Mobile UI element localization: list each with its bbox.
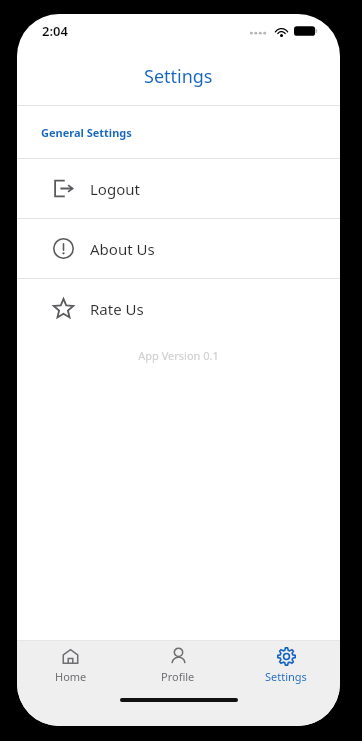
staticText: Profile bbox=[161, 669, 195, 684]
staticText: 2:04 bbox=[42, 22, 68, 40]
button[interactable]: About Us bbox=[17, 219, 340, 278]
button[interactable]: Home bbox=[17, 641, 124, 690]
staticText: Rate Us bbox=[90, 299, 144, 319]
staticText: Settings bbox=[265, 669, 307, 684]
button[interactable]: Profile bbox=[124, 641, 232, 690]
staticText: Logout bbox=[90, 179, 140, 199]
staticText: Settings bbox=[144, 64, 213, 89]
staticText: About Us bbox=[90, 239, 155, 259]
staticText: Home bbox=[55, 669, 87, 684]
button[interactable]: Rate Us bbox=[17, 279, 340, 338]
staticText: General Settings bbox=[41, 125, 132, 140]
button[interactable]: Settings bbox=[232, 641, 340, 690]
staticText: App Version 0.1 bbox=[17, 348, 340, 363]
button[interactable]: Logout bbox=[17, 159, 340, 218]
